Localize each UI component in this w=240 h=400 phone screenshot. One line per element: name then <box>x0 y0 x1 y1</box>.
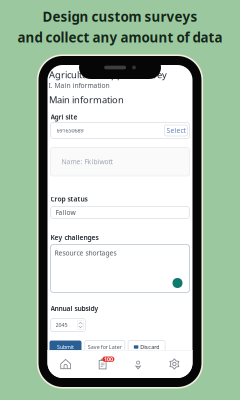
staticText: Fallow <box>55 208 75 217</box>
button[interactable]: Select <box>164 125 187 136</box>
staticText: Agri site <box>50 112 77 121</box>
button[interactable]: Home <box>47 350 84 378</box>
staticText: 2045 <box>55 321 67 329</box>
button[interactable]: Save for Later <box>85 340 125 353</box>
button[interactable]: Settings <box>156 350 192 378</box>
staticText: 100 <box>104 356 113 363</box>
button[interactable]: Discard <box>128 340 165 353</box>
button[interactable]: Adjust subsidy <box>77 320 83 329</box>
staticText: 691650689 <box>56 127 83 134</box>
staticText: Save for Later <box>88 343 122 351</box>
staticText: Annual subsidy <box>50 304 98 313</box>
staticText: Agricultural support survey <box>49 68 167 81</box>
staticText: Discard <box>140 343 159 351</box>
staticText: Select <box>166 126 185 135</box>
staticText: Main information <box>49 93 124 106</box>
staticText: Design custom surveys <box>42 8 197 25</box>
staticText: Key challenges <box>50 233 98 242</box>
staticText: Submit <box>57 343 74 351</box>
staticText: Resource shortages <box>54 248 116 257</box>
button[interactable]: Record voice note <box>172 278 182 288</box>
staticText: Name: Fkibiwott <box>61 157 112 166</box>
staticText: and collect any amount of data <box>17 28 222 46</box>
staticText: Crop status <box>50 194 87 203</box>
button[interactable]: Surveys, 100 pending <box>84 350 120 378</box>
button[interactable]: Map <box>120 350 156 378</box>
button[interactable]: Submit <box>49 340 81 353</box>
staticText: I. Main information <box>48 81 109 90</box>
